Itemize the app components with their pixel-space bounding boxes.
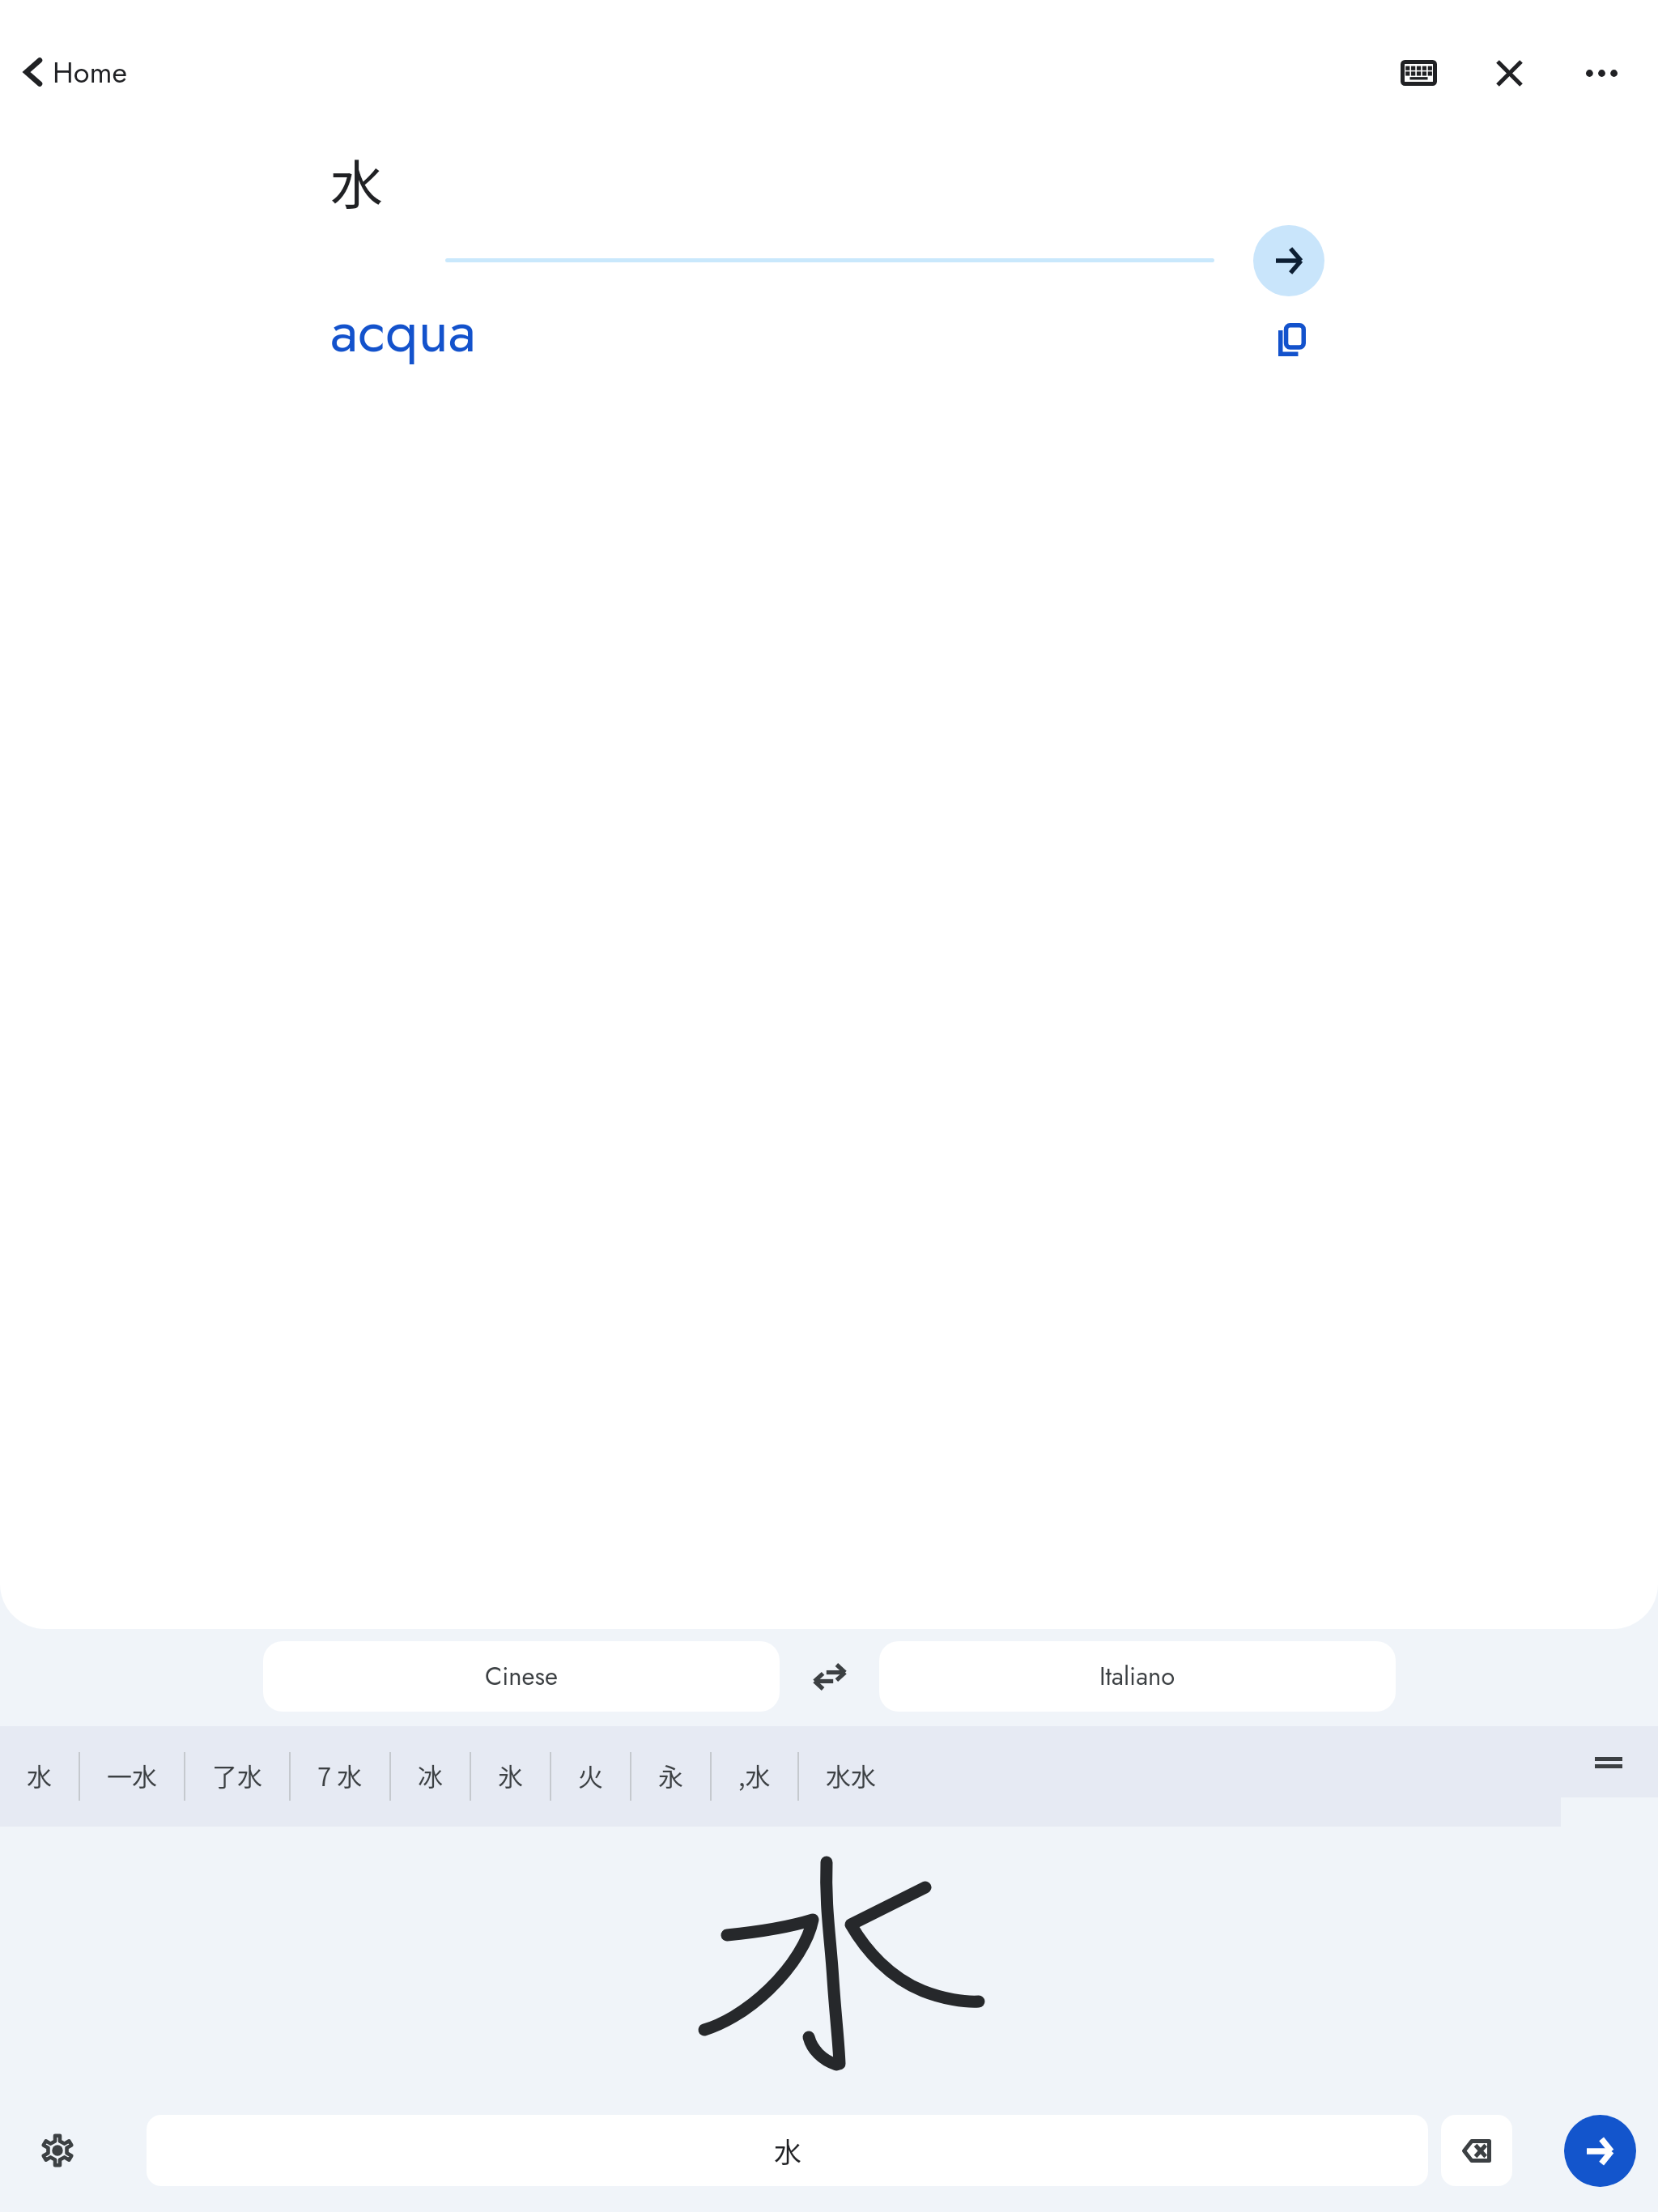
button[interactable]: Home — [3, 33, 149, 111]
button[interactable]: 氷 — [471, 1726, 550, 1827]
staticText: 永 — [658, 1757, 683, 1793]
button[interactable]: More options — [1554, 26, 1648, 120]
staticText: 水 — [330, 143, 384, 219]
staticText: 一水 — [107, 1757, 157, 1793]
button[interactable]: Translate — [1253, 225, 1324, 296]
button[interactable]: 冰 — [391, 1726, 470, 1827]
staticText: Italiano — [1099, 1658, 1175, 1695]
staticText: 了水 — [212, 1757, 262, 1793]
staticText: acqua — [330, 290, 476, 373]
staticText: 冰 — [418, 1757, 443, 1793]
staticText: 氷 — [498, 1757, 523, 1793]
button[interactable]: 7 水 — [291, 1726, 389, 1827]
button[interactable]: ,水 — [712, 1726, 797, 1827]
staticText: 火 — [578, 1757, 603, 1793]
button[interactable]: Backspace — [1441, 2115, 1512, 2186]
button[interactable]: Close — [1462, 26, 1556, 120]
button[interactable]: 一水 — [80, 1726, 184, 1827]
button[interactable]: 水 — [147, 2115, 1428, 2186]
button[interactable]: 永 — [631, 1726, 710, 1827]
button[interactable]: 水水 — [799, 1726, 903, 1827]
button[interactable]: Settings — [23, 2116, 91, 2184]
staticText: ,水 — [738, 1757, 771, 1793]
button[interactable]: Italiano — [879, 1641, 1396, 1712]
staticText: 水 — [774, 2131, 801, 2171]
button[interactable]: 了水 — [185, 1726, 289, 1827]
button[interactable]: 水 — [0, 1726, 79, 1827]
staticText: Cinese — [485, 1658, 558, 1695]
button[interactable]: Copy — [1255, 302, 1329, 376]
staticText: 水水 — [826, 1757, 876, 1793]
staticText: Home — [53, 51, 128, 93]
staticText: 7 水 — [317, 1757, 363, 1793]
staticText: 水 — [27, 1757, 52, 1793]
button[interactable]: Keyboard — [1371, 26, 1465, 120]
button[interactable]: 火 — [551, 1726, 630, 1827]
button[interactable]: Cinese — [263, 1641, 780, 1712]
button[interactable]: Enter — [1564, 2115, 1636, 2187]
button[interactable]: Swap languages — [780, 1641, 879, 1712]
button[interactable]: Expand keyboard — [1571, 1725, 1646, 1800]
